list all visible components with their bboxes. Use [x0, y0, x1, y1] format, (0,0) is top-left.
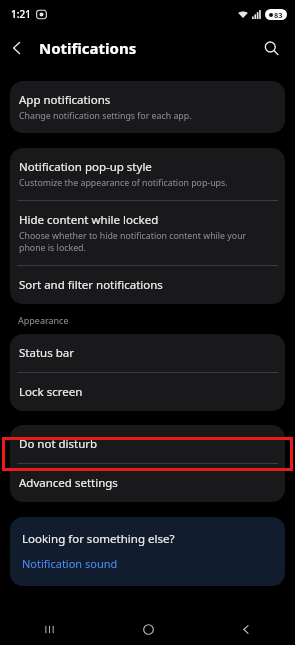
button[interactable]: Status bar: [10, 334, 285, 372]
staticText: Hide content while locked: [19, 212, 159, 228]
staticText: Advanced settings: [19, 475, 118, 491]
staticText: App notifications: [19, 92, 111, 108]
staticText: Notification pop-up style: [19, 159, 152, 175]
button[interactable]: App notifications: [10, 81, 285, 133]
staticText: Notification sound: [22, 556, 118, 571]
staticText: Lock screen: [19, 384, 83, 400]
button[interactable]: Notification sound: [22, 556, 118, 571]
button[interactable]: Lock screen: [10, 373, 285, 411]
staticText: Looking for something else?: [22, 531, 175, 547]
button[interactable]: Sort and filter notifications: [10, 266, 285, 304]
staticText: Choose whether to hide notification cont…: [19, 230, 273, 254]
staticText: Sort and filter notifications: [19, 277, 163, 293]
staticText: Customize the appearance of notification…: [19, 177, 228, 189]
staticText: 1:21: [11, 7, 31, 21]
button[interactable]: Back: [197, 613, 295, 645]
staticText: Notifications: [39, 38, 137, 58]
button[interactable]: Notification pop-up style: [10, 148, 285, 200]
staticText: Change notification settings for each ap…: [19, 110, 192, 122]
button[interactable]: Advanced settings: [10, 464, 285, 502]
staticText: Appearance: [18, 314, 69, 326]
staticText: Do not disturb: [19, 436, 98, 452]
button[interactable]: Recent apps: [0, 613, 99, 645]
button[interactable]: Hide content while locked: [10, 201, 285, 265]
button[interactable]: Search: [255, 32, 287, 64]
button[interactable]: Back: [0, 31, 34, 65]
staticText: 83: [274, 10, 283, 20]
button[interactable]: Home: [99, 613, 197, 645]
staticText: Status bar: [19, 345, 74, 361]
button[interactable]: Do not disturb: [10, 425, 285, 463]
